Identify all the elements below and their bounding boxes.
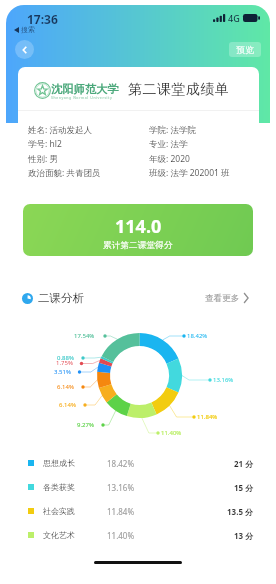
button[interactable]: 思想成长: [6, 451, 270, 475]
staticText: 学院: 法学院: [149, 124, 196, 136]
staticText: 政治面貌: 共青团员: [28, 167, 101, 179]
button[interactable]: 查看更多: [205, 286, 249, 310]
button[interactable]: 文化艺术: [6, 523, 270, 547]
staticText: 文化艺术: [43, 530, 75, 540]
staticText: 班级: 法学 202001 班: [149, 167, 230, 179]
staticText: 3.51%: [54, 368, 71, 376]
staticText: 17.54%: [74, 332, 95, 340]
staticText: 思想成长: [43, 458, 75, 468]
staticText: 社会实践: [43, 506, 75, 516]
staticText: 9.27%: [77, 421, 94, 429]
staticText: 13.16%: [107, 482, 135, 493]
button[interactable]: 预览: [229, 42, 261, 57]
staticText: 二课分析: [38, 291, 84, 305]
staticText: 18.42%: [107, 458, 135, 469]
staticText: Shenyang Normal University: [51, 95, 113, 100]
staticText: 专业: 法学: [149, 138, 188, 150]
staticText: 姓名: 活动发起人: [28, 124, 92, 136]
staticText: 21 分: [234, 458, 254, 469]
staticText: 15 分: [234, 482, 254, 493]
staticText: 13.5 分: [227, 506, 254, 517]
staticText: 6.14%: [59, 401, 76, 409]
staticText: 第二课堂成绩单: [128, 81, 230, 99]
staticText: 1.75%: [56, 359, 73, 367]
staticText: 13.16%: [213, 376, 234, 384]
staticText: 11.40%: [107, 530, 135, 541]
button[interactable]: Back: [15, 40, 34, 59]
button[interactable]: 各类获奖: [6, 475, 270, 499]
staticText: 搜索: [21, 25, 35, 34]
staticText: 沈阳师范大学: [51, 82, 119, 96]
staticText: 17:36: [27, 11, 58, 27]
staticText: 4G: [228, 12, 240, 24]
staticText: 114.0: [115, 214, 162, 239]
staticText: 年级: 2020: [149, 153, 190, 165]
staticText: 11.84%: [107, 506, 135, 517]
staticText: 查看更多: [205, 293, 240, 304]
staticText: 0.88%: [57, 354, 74, 362]
staticText: 18.42%: [187, 332, 208, 340]
staticText: 6.14%: [57, 383, 74, 391]
staticText: 13 分: [234, 530, 254, 541]
button[interactable]: 社会实践: [6, 499, 270, 523]
staticText: 学号: hl2: [28, 138, 62, 150]
button[interactable]: 二课分析: [22, 286, 84, 310]
staticText: 性别: 男: [28, 153, 58, 165]
staticText: 11.40%: [161, 429, 182, 437]
staticText: 预览: [236, 44, 254, 55]
staticText: 各类获奖: [43, 482, 75, 492]
staticText: 累计第二课堂得分: [103, 240, 173, 251]
staticText: 11.84%: [197, 413, 218, 421]
